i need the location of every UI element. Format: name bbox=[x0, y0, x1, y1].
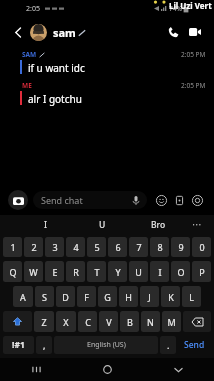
staticText: 6 bbox=[115, 241, 121, 253]
staticText: alr I gotchu bbox=[28, 92, 82, 106]
button[interactable]: 1 bbox=[3, 237, 22, 257]
button[interactable]: O bbox=[171, 261, 190, 282]
button[interactable]: B bbox=[120, 311, 139, 332]
staticText: G bbox=[104, 291, 111, 303]
button[interactable]: C bbox=[78, 311, 97, 332]
staticText: !#1 bbox=[12, 339, 25, 351]
button[interactable]: 3 bbox=[45, 237, 64, 257]
staticText: 2:05 PM bbox=[181, 81, 206, 90]
button[interactable]: I bbox=[150, 261, 169, 282]
button[interactable] bbox=[30, 24, 47, 41]
button[interactable]: N bbox=[141, 311, 160, 332]
button[interactable]: M bbox=[162, 311, 181, 332]
button[interactable]: 0 bbox=[192, 237, 211, 257]
button[interactable]: 8 bbox=[150, 237, 169, 257]
staticText: T bbox=[94, 266, 100, 278]
button[interactable]: Recent apps bbox=[0, 358, 72, 381]
button[interactable]: D bbox=[56, 286, 75, 307]
staticText: 8 bbox=[157, 241, 163, 253]
staticText: U bbox=[99, 219, 106, 231]
staticText: Send chat bbox=[41, 194, 83, 206]
staticText: 2:05 bbox=[26, 4, 40, 14]
staticText: 74% bbox=[169, 4, 182, 13]
button[interactable]: Backspace bbox=[183, 311, 211, 332]
staticText: V bbox=[106, 316, 112, 328]
staticText: C bbox=[85, 316, 91, 328]
staticText: A bbox=[20, 291, 26, 303]
staticText: E bbox=[52, 266, 58, 278]
staticText: F bbox=[84, 291, 89, 303]
button[interactable]: 7 bbox=[129, 237, 148, 257]
button[interactable]: 5 bbox=[87, 237, 106, 257]
staticText: H bbox=[125, 291, 132, 303]
button[interactable]: K bbox=[161, 286, 180, 307]
staticText: X bbox=[63, 316, 69, 328]
button[interactable]: 4 bbox=[66, 237, 85, 257]
staticText: ⋯ bbox=[192, 219, 202, 231]
button[interactable]: T bbox=[87, 261, 106, 282]
button[interactable]: X bbox=[56, 311, 76, 332]
button[interactable]: F bbox=[77, 286, 96, 307]
button[interactable]: J bbox=[140, 286, 159, 307]
button[interactable]: V bbox=[99, 311, 118, 332]
button[interactable]: 2 bbox=[24, 237, 43, 257]
staticText: 4 bbox=[73, 241, 79, 253]
staticText: P bbox=[199, 266, 205, 278]
button[interactable]: Hide keyboard bbox=[143, 358, 214, 381]
button[interactable]: More bbox=[188, 191, 206, 209]
staticText: K bbox=[168, 291, 174, 303]
button[interactable]: More suggestions bbox=[186, 215, 208, 235]
staticText: 7 bbox=[136, 241, 142, 253]
button[interactable]: Shift bbox=[3, 311, 32, 332]
staticText: I bbox=[158, 266, 162, 278]
staticText: L bbox=[189, 291, 194, 303]
button[interactable]: Emoji bbox=[152, 191, 170, 209]
button[interactable]: Y bbox=[108, 261, 127, 282]
staticText: . bbox=[167, 339, 170, 351]
button[interactable]: A bbox=[13, 286, 33, 307]
staticText: 3 bbox=[52, 241, 58, 253]
button[interactable]: P bbox=[192, 261, 211, 282]
button[interactable]: G bbox=[98, 286, 117, 307]
button[interactable]: H bbox=[119, 286, 138, 307]
staticText: W bbox=[29, 266, 38, 278]
button[interactable]: S bbox=[35, 286, 54, 307]
button[interactable]: English (US) bbox=[54, 336, 158, 354]
button[interactable]: Send chat bbox=[33, 191, 147, 209]
button[interactable]: !#1 bbox=[3, 336, 34, 354]
staticText: J bbox=[148, 291, 151, 303]
staticText: I bbox=[44, 219, 48, 231]
button[interactable]: Call bbox=[162, 21, 184, 43]
staticText: B bbox=[127, 316, 133, 328]
staticText: Bro bbox=[151, 219, 166, 231]
staticText: N bbox=[147, 316, 154, 328]
button[interactable]: R bbox=[66, 261, 85, 282]
button[interactable]: Video call bbox=[184, 21, 206, 43]
button[interactable]: U bbox=[74, 215, 130, 235]
button[interactable]: E bbox=[45, 261, 64, 282]
staticText: 9 bbox=[178, 241, 184, 253]
button[interactable]: W bbox=[24, 261, 43, 282]
button[interactable]: Bro bbox=[130, 215, 186, 235]
button[interactable]: Q bbox=[3, 261, 22, 282]
staticText: Send bbox=[184, 339, 205, 351]
staticText: English (US) bbox=[87, 340, 126, 350]
button[interactable]: sam bbox=[53, 25, 162, 40]
staticText: 0 bbox=[199, 241, 205, 253]
button[interactable]: I bbox=[18, 215, 74, 235]
button[interactable]: Z bbox=[34, 311, 54, 332]
button[interactable]: , bbox=[36, 336, 52, 354]
staticText: , bbox=[43, 339, 46, 351]
button[interactable]: 9 bbox=[171, 237, 190, 257]
button[interactable]: Back bbox=[8, 22, 28, 42]
button[interactable]: Camera bbox=[8, 190, 28, 210]
button[interactable]: . bbox=[160, 336, 176, 354]
staticText: D bbox=[62, 291, 69, 303]
button[interactable]: L bbox=[182, 286, 201, 307]
button[interactable]: U bbox=[129, 261, 148, 282]
button[interactable]: Home bbox=[72, 358, 143, 381]
button[interactable]: Stickers bbox=[170, 191, 188, 209]
staticText: 1 bbox=[10, 241, 16, 253]
button[interactable]: 6 bbox=[108, 237, 127, 257]
button[interactable]: Send bbox=[178, 336, 211, 354]
